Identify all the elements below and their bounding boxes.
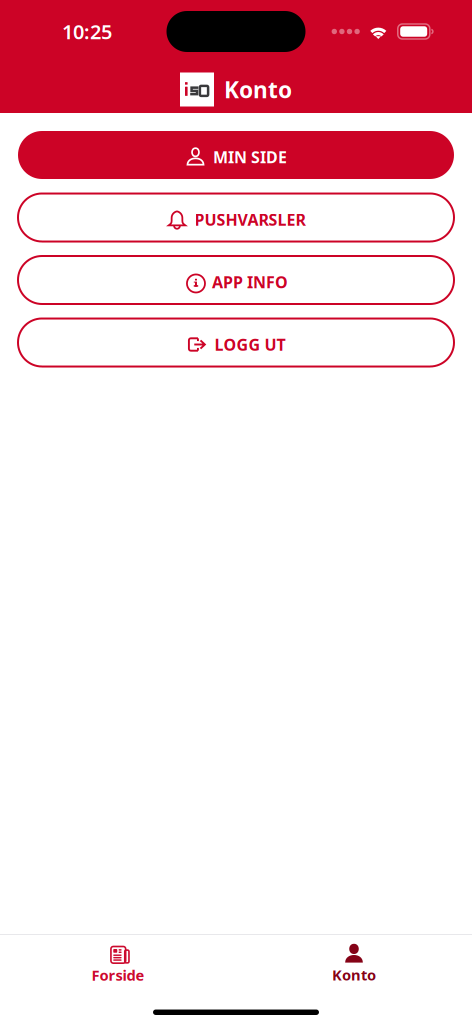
button[interactable]: Konto [236,944,472,985]
button[interactable]: LOGG UT [18,318,454,366]
button[interactable]: PUSHVARSLER [18,193,454,241]
staticText: PUSHVARSLER [194,209,305,230]
button[interactable]: MIN SIDE [18,131,454,179]
staticText: 10:25 [62,18,112,45]
button[interactable]: Forside [0,944,236,985]
staticText: Konto [332,965,376,985]
staticText: APP INFO [212,271,288,293]
staticText: LOGG UT [214,334,285,355]
staticText: MIN SIDE [213,146,287,168]
staticText: Forside [91,965,144,985]
button[interactable]: APP INFO [18,256,454,304]
staticText: Konto [224,74,292,104]
